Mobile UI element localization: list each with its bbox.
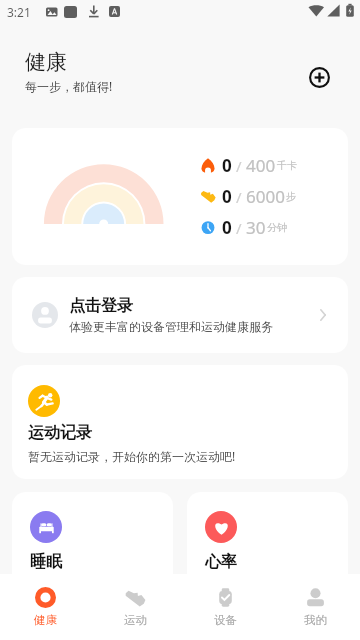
button[interactable]: 运动: [90, 574, 180, 640]
button[interactable]: 心率: [187, 492, 348, 602]
staticText: 睡眠: [30, 552, 62, 572]
staticText: 心率: [205, 552, 237, 572]
staticText: 3:21: [7, 4, 31, 20]
button[interactable]: 设备: [180, 574, 270, 640]
button[interactable]: 运动记录: [12, 365, 348, 479]
staticText: /: [236, 218, 242, 238]
staticText: 千卡: [277, 159, 297, 172]
staticText: 暂无运动记录，开始你的第一次运动吧!: [28, 448, 236, 464]
staticText: 健康: [25, 49, 67, 75]
button[interactable]: 点击登录: [12, 277, 348, 353]
staticText: 点击登录: [69, 296, 133, 316]
button[interactable]: 健康: [0, 574, 90, 640]
staticText: 0: [222, 216, 232, 239]
button[interactable]: 我的: [270, 574, 360, 640]
staticText: 运动: [124, 613, 147, 627]
staticText: 健康: [34, 613, 57, 627]
staticText: 6000: [246, 185, 285, 208]
staticText: /: [236, 156, 242, 176]
button[interactable]: Add: [302, 60, 336, 94]
staticText: 运动记录: [28, 423, 92, 443]
staticText: /: [236, 187, 242, 207]
button[interactable]: 睡眠: [12, 492, 173, 602]
staticText: 分钟: [267, 221, 287, 234]
staticText: 我的: [304, 613, 327, 627]
staticText: 每一步，都值得!: [25, 78, 113, 94]
button[interactable]: 0: [12, 128, 348, 265]
staticText: 设备: [214, 613, 237, 627]
staticText: 0: [222, 154, 232, 177]
staticText: 400: [246, 154, 276, 177]
staticText: 30: [246, 216, 266, 239]
staticText: 0: [222, 185, 232, 208]
staticText: 步: [286, 190, 296, 203]
staticText: 体验更丰富的设备管理和运动健康服务: [69, 319, 273, 334]
